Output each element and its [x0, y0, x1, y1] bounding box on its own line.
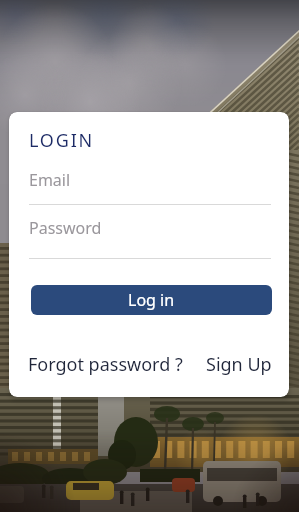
button[interactable]: Email [29, 167, 271, 205]
staticText: Forgot password ? [28, 352, 183, 377]
staticText: LOGIN [29, 128, 95, 153]
staticText: Password [29, 217, 102, 239]
button[interactable]: Forgot password ? [28, 352, 183, 377]
staticText: Email [29, 169, 71, 191]
staticText: Sign Up [206, 352, 272, 377]
button[interactable]: Password [29, 215, 271, 259]
staticText: Log in [128, 289, 175, 311]
button[interactable]: Sign Up [206, 352, 272, 377]
button[interactable]: Log in [31, 285, 272, 315]
